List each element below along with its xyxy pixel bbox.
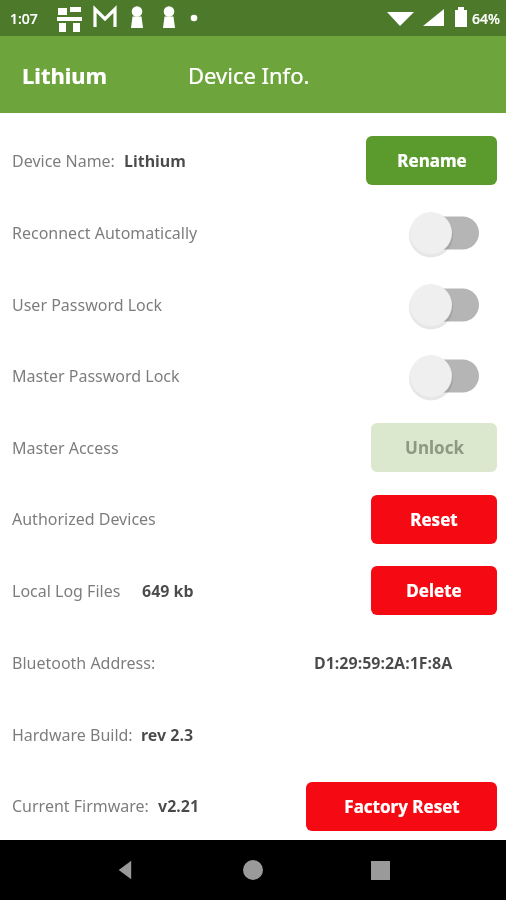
- button[interactable]: Toggle setting: [405, 282, 481, 328]
- button[interactable]: Authorized Devices: [0, 497, 506, 541]
- staticText: Reset: [410, 508, 458, 531]
- staticText: 64%: [472, 9, 500, 28]
- button[interactable]: D1:29:59:2A:1F:8A: [0, 641, 506, 685]
- staticText: Factory Reset: [344, 795, 460, 818]
- staticText: rev 2.3: [141, 724, 194, 746]
- button[interactable]: Bluetooth Address:: [0, 641, 506, 685]
- button[interactable]: Reset: [371, 495, 497, 544]
- button[interactable]: User Password Lock: [0, 283, 506, 327]
- button[interactable]: Unlock: [371, 423, 497, 472]
- button[interactable]: Master Password Lock: [0, 354, 506, 398]
- button[interactable]: Current Firmware:: [0, 784, 506, 828]
- staticText: v2.21: [158, 795, 200, 817]
- staticText: Hardware Build:: [12, 724, 141, 746]
- button[interactable]: Device Name:: [0, 139, 506, 183]
- staticText: Device Name:: [12, 150, 124, 172]
- button[interactable]: Home: [225, 842, 281, 898]
- button[interactable]: Rename: [366, 136, 497, 185]
- staticText: Lithium: [124, 150, 186, 172]
- staticText: Device Info.: [188, 60, 310, 90]
- staticText: Rename: [397, 149, 467, 172]
- button[interactable]: Toggle setting: [405, 353, 481, 399]
- button[interactable]: Factory Reset: [306, 782, 497, 831]
- staticText: D1:29:59:2A:1F:8A: [314, 652, 453, 674]
- staticText: Bluetooth Address:: [12, 652, 156, 674]
- staticText: Master Access: [12, 437, 119, 459]
- staticText: User Password Lock: [12, 294, 162, 316]
- button[interactable]: Delete: [371, 566, 497, 615]
- staticText: Reconnect Automatically: [12, 222, 198, 244]
- staticText: 1:07: [10, 9, 38, 28]
- staticText: 649 kb: [142, 580, 194, 602]
- button[interactable]: Local Log Files: [0, 569, 506, 613]
- button[interactable]: Reconnect Automatically: [0, 211, 506, 255]
- button[interactable]: Toggle setting: [405, 210, 481, 256]
- staticText: Authorized Devices: [12, 508, 156, 530]
- staticText: Local Log Files: [12, 580, 142, 602]
- staticText: Unlock: [405, 436, 464, 459]
- button[interactable]: Master Access: [0, 426, 506, 470]
- button[interactable]: Back: [98, 842, 154, 898]
- button[interactable]: Lithium: [22, 60, 108, 90]
- button[interactable]: Hardware Build:: [0, 713, 506, 757]
- staticText: Delete: [406, 579, 462, 602]
- staticText: Master Password Lock: [12, 365, 180, 387]
- staticText: Current Firmware:: [12, 795, 158, 817]
- button[interactable]: Recent apps: [352, 842, 408, 898]
